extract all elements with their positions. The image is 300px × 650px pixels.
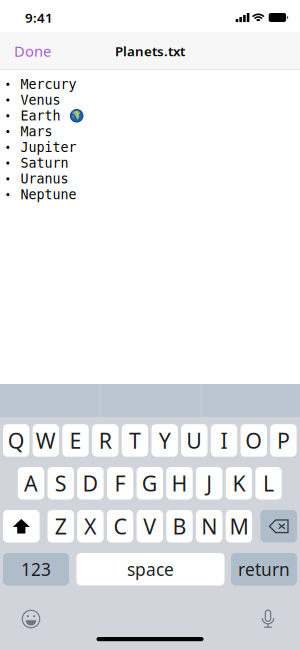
button[interactable]: V bbox=[137, 510, 163, 542]
staticText: Uranus bbox=[20, 171, 68, 186]
button[interactable]: W bbox=[33, 424, 59, 457]
button[interactable]: L bbox=[255, 467, 282, 499]
button[interactable]: H bbox=[166, 467, 193, 499]
staticText: W bbox=[36, 426, 56, 455]
button[interactable]: P bbox=[270, 424, 297, 457]
staticText: F bbox=[115, 469, 126, 497]
staticText: A bbox=[24, 469, 38, 497]
staticText: 9:41 bbox=[25, 9, 53, 26]
staticText: Saturn bbox=[20, 155, 68, 171]
staticText: space bbox=[127, 558, 174, 581]
staticText: return bbox=[238, 558, 290, 581]
button[interactable]: return bbox=[231, 553, 297, 585]
button[interactable]: B bbox=[166, 510, 193, 542]
button[interactable]: Delete bbox=[260, 510, 297, 542]
button[interactable]: G bbox=[137, 467, 163, 499]
staticText: Planets.txt bbox=[115, 42, 185, 60]
button[interactable]: U bbox=[181, 424, 207, 457]
staticText: O bbox=[245, 426, 262, 455]
button[interactable]: O bbox=[241, 424, 267, 457]
staticText: 123 bbox=[21, 558, 51, 581]
staticText: V bbox=[143, 512, 156, 540]
button[interactable]: M bbox=[226, 510, 252, 542]
button[interactable]: A bbox=[18, 467, 44, 499]
staticText: I bbox=[220, 426, 227, 455]
staticText: Q bbox=[8, 426, 25, 455]
staticText: N bbox=[201, 512, 217, 540]
staticText: E bbox=[69, 426, 81, 455]
button[interactable]: R bbox=[92, 424, 118, 457]
button[interactable]: Done bbox=[0, 31, 65, 71]
staticText: P bbox=[277, 426, 290, 455]
button[interactable]: F bbox=[107, 467, 133, 499]
staticText: Mars bbox=[20, 124, 52, 139]
staticText: Z bbox=[55, 512, 67, 540]
staticText: Mercury bbox=[20, 77, 76, 92]
staticText: Neptune bbox=[20, 187, 76, 202]
staticText: T bbox=[129, 426, 141, 455]
staticText: X bbox=[84, 512, 97, 540]
button[interactable]: C bbox=[107, 510, 133, 542]
staticText: B bbox=[172, 512, 186, 540]
staticText: L bbox=[263, 469, 274, 497]
staticText: Earth bbox=[20, 108, 60, 123]
button[interactable]: Emoji keyboard bbox=[16, 604, 46, 634]
button[interactable]: Z bbox=[47, 510, 74, 542]
button[interactable]: I bbox=[211, 424, 237, 457]
staticText: U bbox=[186, 426, 202, 455]
staticText: S bbox=[55, 469, 67, 497]
staticText: Done bbox=[14, 41, 51, 61]
staticText: J bbox=[206, 469, 212, 497]
button[interactable]: Shift bbox=[3, 510, 40, 542]
button[interactable]: D bbox=[77, 467, 103, 499]
button[interactable]: Dictate bbox=[253, 604, 283, 634]
staticText: D bbox=[82, 469, 98, 497]
button[interactable]: X bbox=[77, 510, 103, 542]
button[interactable]: N bbox=[196, 510, 222, 542]
button[interactable]: T bbox=[122, 424, 148, 457]
staticText: Jupiter bbox=[20, 140, 76, 155]
button[interactable]: 123 bbox=[3, 553, 69, 585]
button[interactable]: Q bbox=[3, 424, 29, 457]
staticText: G bbox=[142, 469, 158, 497]
button[interactable]: S bbox=[47, 467, 74, 499]
button[interactable]: K bbox=[226, 467, 252, 499]
staticText: R bbox=[99, 426, 112, 455]
button[interactable]: space bbox=[76, 553, 224, 585]
staticText: M bbox=[229, 512, 248, 540]
button[interactable]: Y bbox=[151, 424, 178, 457]
staticText: H bbox=[171, 469, 187, 497]
staticText: Venus bbox=[20, 92, 60, 108]
staticText: K bbox=[232, 469, 245, 497]
button[interactable]: E bbox=[62, 424, 89, 457]
staticText: C bbox=[114, 512, 127, 540]
staticText: Y bbox=[159, 426, 171, 455]
button[interactable]: J bbox=[196, 467, 222, 499]
